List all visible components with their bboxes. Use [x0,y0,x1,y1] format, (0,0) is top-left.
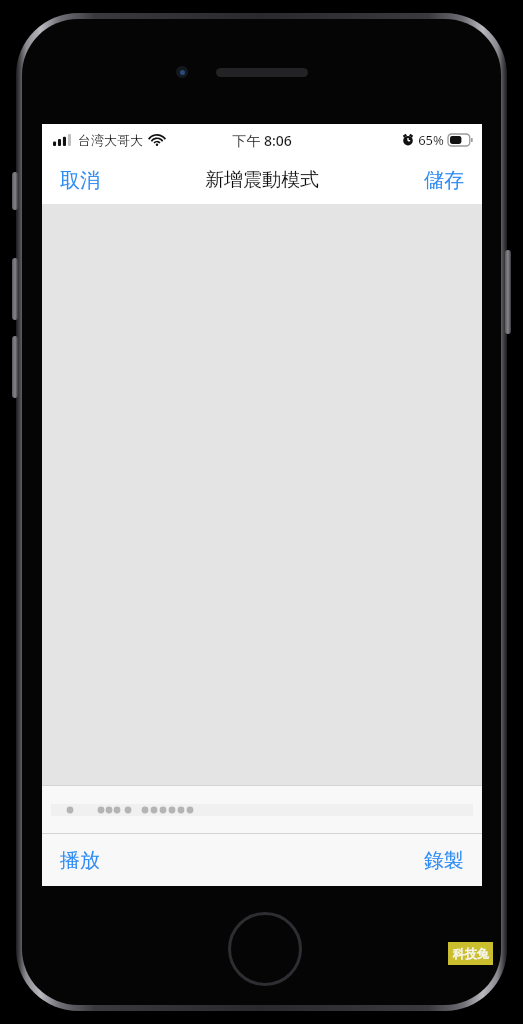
staticText: 新增震動模式 [205,168,319,192]
button[interactable]: 儲存 [406,156,482,204]
staticText: 錄製 [424,848,464,873]
staticText: 65% [418,131,444,149]
staticText: 播放 [60,848,100,873]
staticText: 台湾大哥大 [78,132,143,148]
staticText: 下午 8:06 [232,131,292,150]
button[interactable]: Vibration pattern track [42,786,482,833]
button[interactable]: 播放 [42,834,118,886]
staticText: 科技兔 [453,946,489,961]
staticText: 儲存 [424,168,464,193]
button[interactable]: 取消 [42,156,118,204]
other: Home [228,912,302,986]
staticText: 取消 [60,168,100,193]
button[interactable]: 錄製 [406,834,482,886]
